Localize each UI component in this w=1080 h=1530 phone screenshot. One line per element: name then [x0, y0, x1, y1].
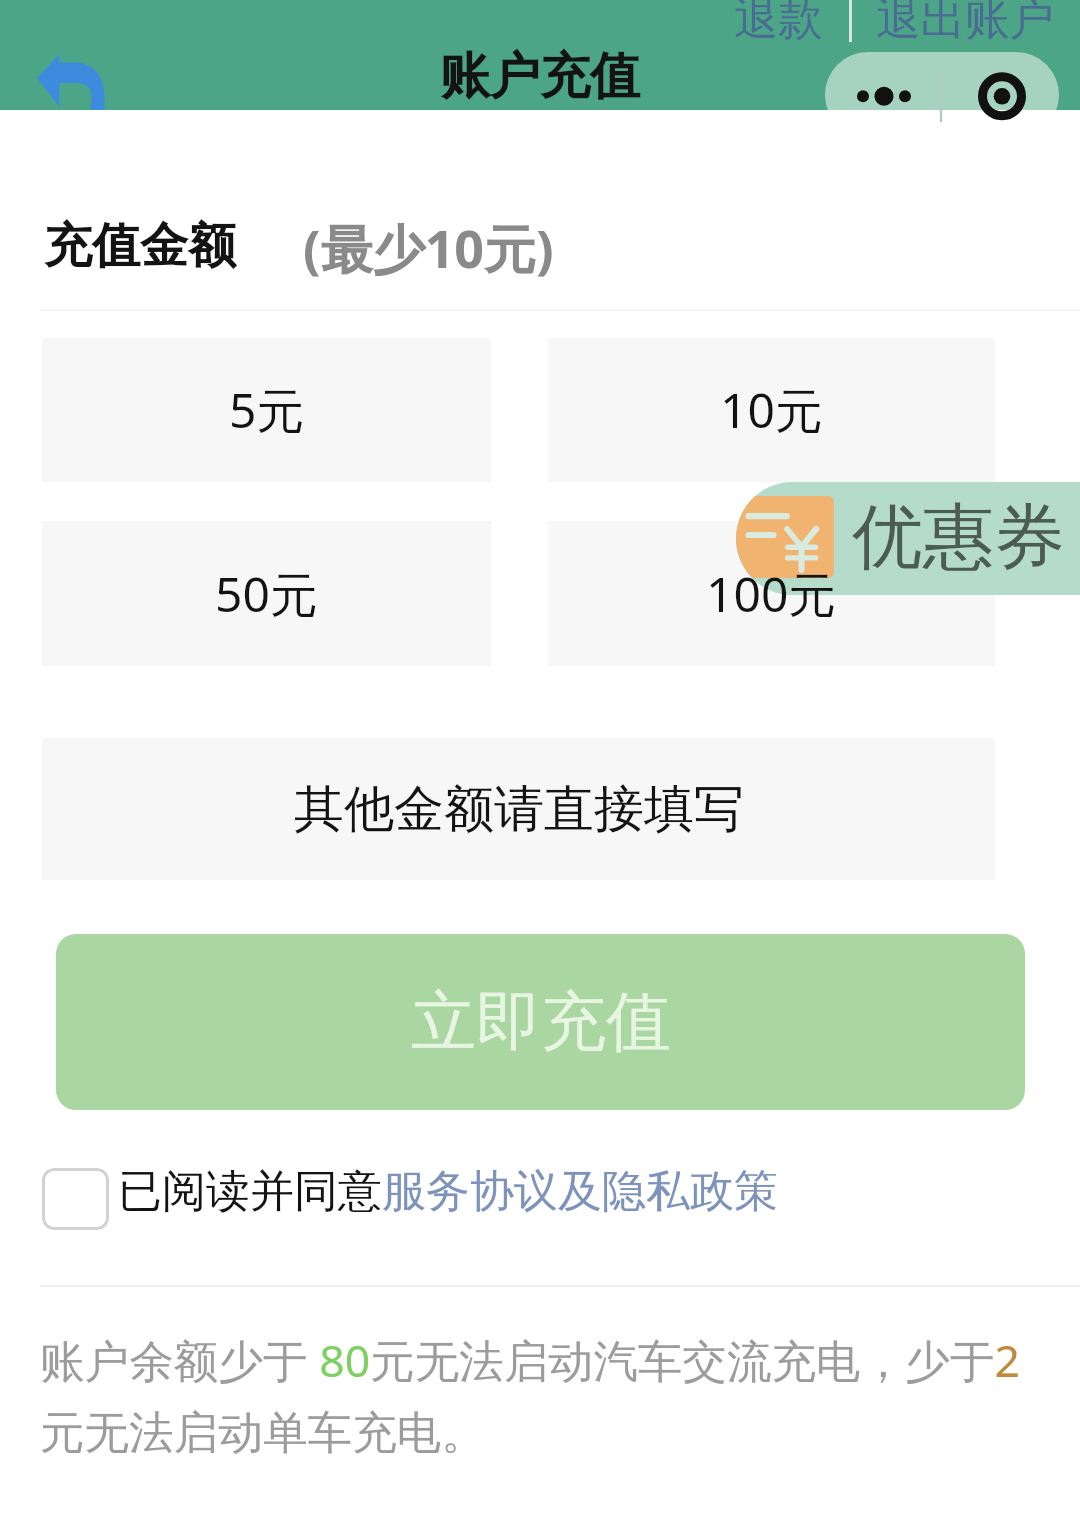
button[interactable]: 50元 [42, 521, 491, 666]
staticText: 50元 [215, 561, 318, 627]
staticText: (最少10元) [303, 212, 554, 283]
button[interactable]: 退款 [734, 0, 823, 47]
button[interactable]: 其他金额请直接填写 [42, 738, 995, 880]
staticText: 其他金额请直接填写 [294, 778, 744, 841]
staticText: 账户余额少于 80元无法启动汽车交流充电，少于2元无法启动单车充电。 [40, 1329, 1050, 1461]
button[interactable]: Close mini program [942, 52, 1059, 138]
staticText: 5元 [229, 377, 305, 443]
button[interactable]: Agree to terms checkbox [44, 1160, 778, 1222]
button[interactable]: 立即充值 [56, 934, 1025, 1110]
staticText: 优惠券 [852, 493, 1065, 582]
staticText: 100元 [706, 561, 837, 627]
button[interactable]: Coupons [736, 482, 1080, 595]
staticText: 充值金额 [44, 216, 236, 276]
button[interactable] [548, 521, 995, 666]
button[interactable]: 5元 [42, 338, 491, 482]
staticText: 立即充值 [411, 981, 671, 1063]
other: Agree to terms checkbox [42, 1168, 109, 1230]
button[interactable]: 10元 [548, 338, 995, 482]
button[interactable]: 退出账户 [876, 0, 1054, 47]
staticText: 已阅读并同意服务协议及隐私政策 [118, 1164, 778, 1219]
button[interactable]: Back [37, 54, 105, 110]
button[interactable]: More options [825, 52, 1059, 138]
staticText: 10元 [720, 377, 823, 443]
staticText: 账户充值 [440, 45, 640, 108]
